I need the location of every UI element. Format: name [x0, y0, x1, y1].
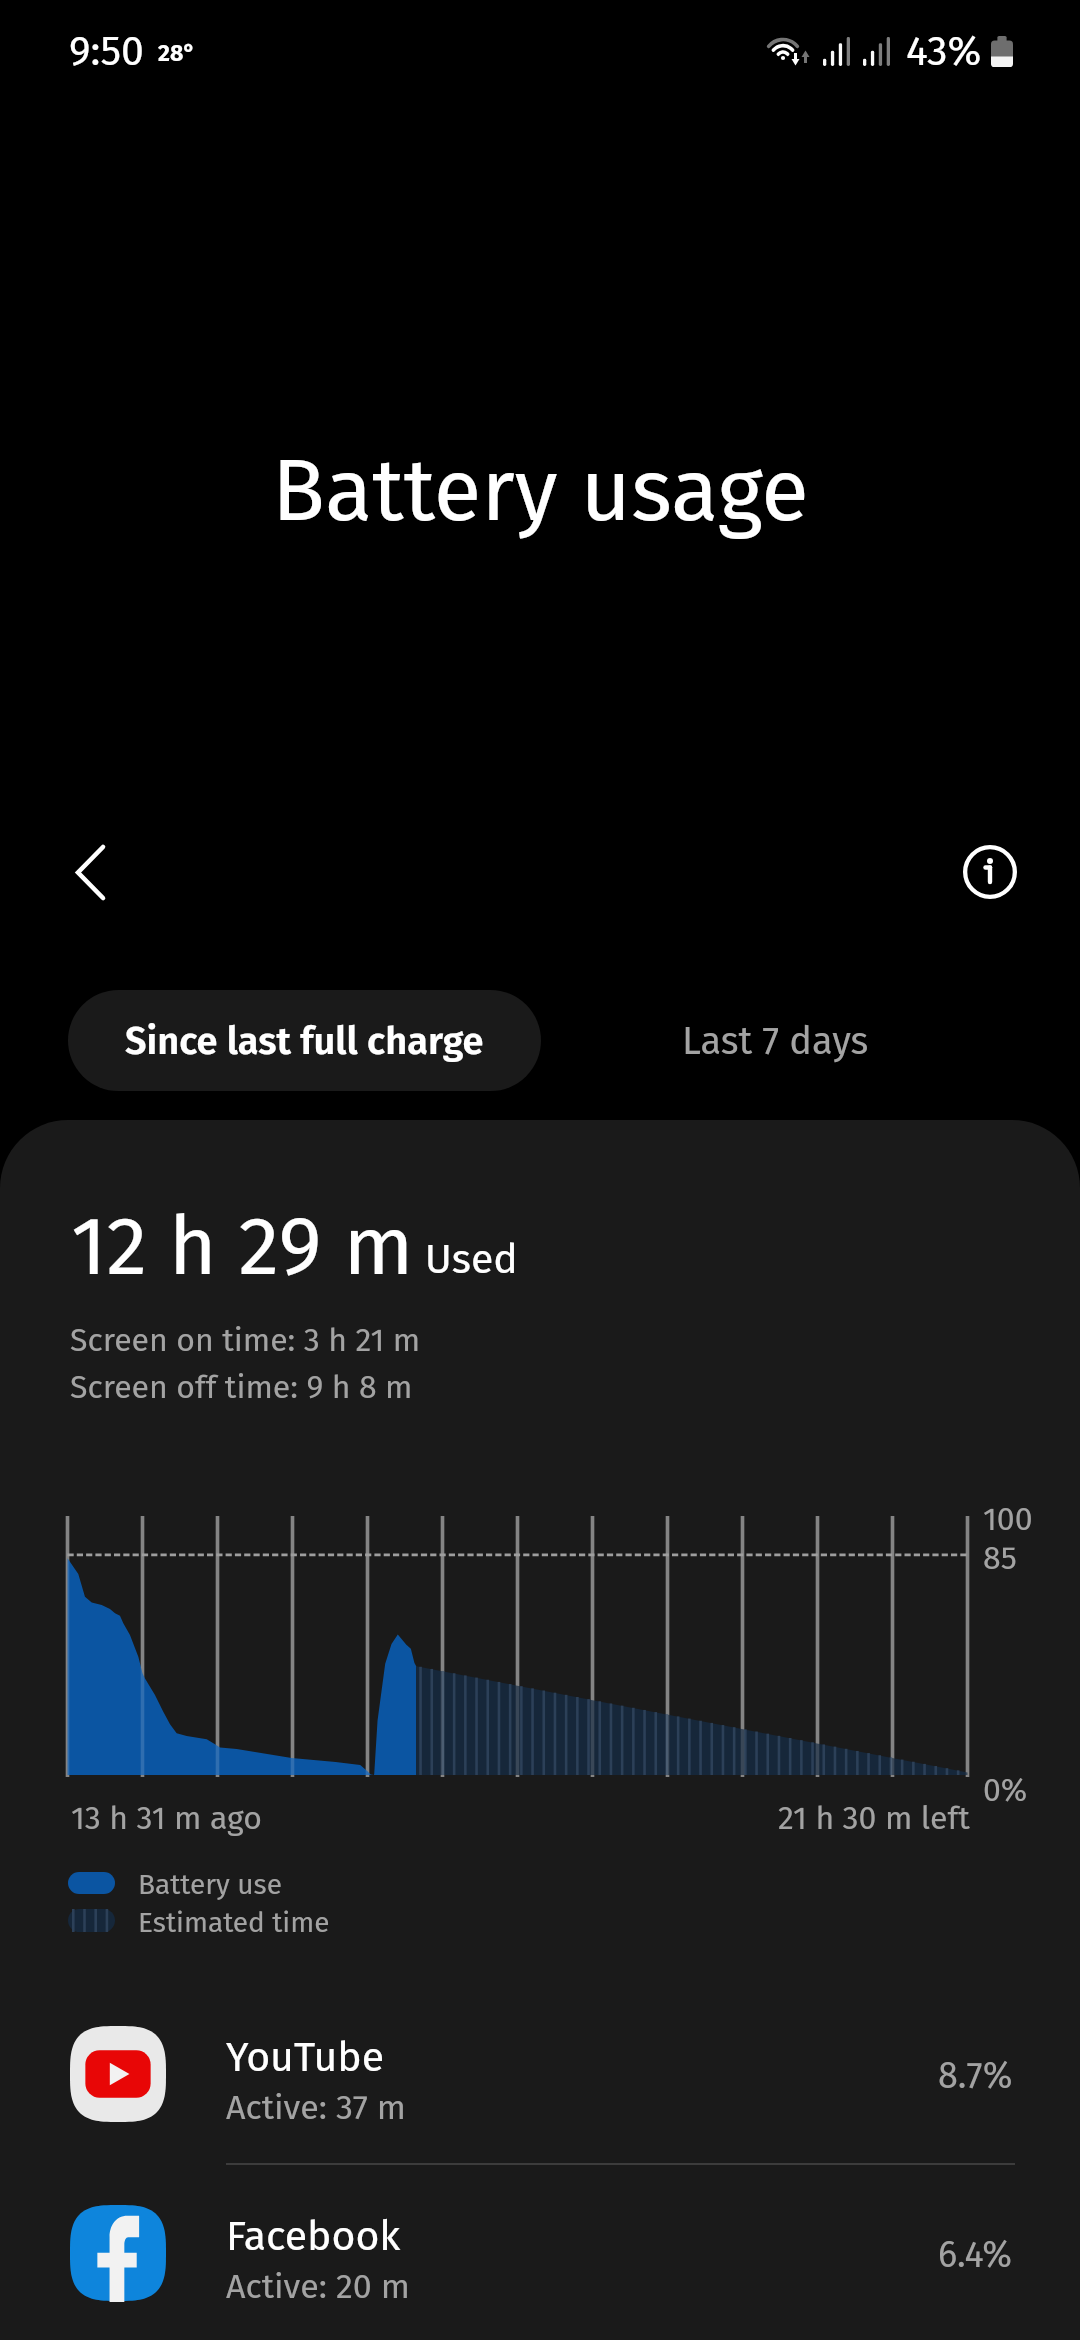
- staticText: 100: [983, 1500, 1033, 1538]
- staticText: 85: [983, 1539, 1017, 1577]
- staticText: 21 h 30 m left: [778, 1799, 970, 1837]
- staticText: 6.4%: [938, 2233, 1012, 2276]
- staticText: 8.7%: [938, 2054, 1013, 2097]
- staticText: Battery usage: [272, 439, 809, 543]
- button[interactable]: Facebook: [0, 2185, 1080, 2340]
- staticText: Active: 37 m: [226, 2087, 406, 2128]
- staticText: 0%: [983, 1771, 1028, 1809]
- staticText: Active: 20 m: [226, 2266, 410, 2307]
- staticText: 13 h 31 m ago: [71, 1799, 262, 1837]
- staticText: 12 h 29 m: [71, 1197, 414, 1295]
- button[interactable]: Information: [942, 824, 1038, 920]
- staticText: 43%: [906, 27, 982, 76]
- staticText: Estimated time: [138, 1906, 330, 1940]
- staticText: Last 7 days: [682, 1018, 869, 1064]
- button[interactable]: YouTube: [0, 2006, 1080, 2164]
- staticText: YouTube: [226, 2033, 385, 2082]
- staticText: Used: [414, 1235, 518, 1284]
- staticText: Screen on time: 3 h 21 m: [70, 1321, 421, 1359]
- button[interactable]: Since last full charge: [68, 990, 541, 1091]
- staticText: Screen off time: 9 h 8 m: [70, 1368, 413, 1406]
- staticText: Battery use: [138, 1868, 282, 1902]
- staticText: 9:50: [69, 27, 144, 76]
- staticText: Facebook: [226, 2212, 401, 2261]
- staticText: 28°: [158, 39, 196, 67]
- button[interactable]: Navigate up: [42, 824, 138, 920]
- staticText: Since last full charge: [125, 1018, 484, 1064]
- button[interactable]: Last 7 days: [612, 990, 938, 1091]
